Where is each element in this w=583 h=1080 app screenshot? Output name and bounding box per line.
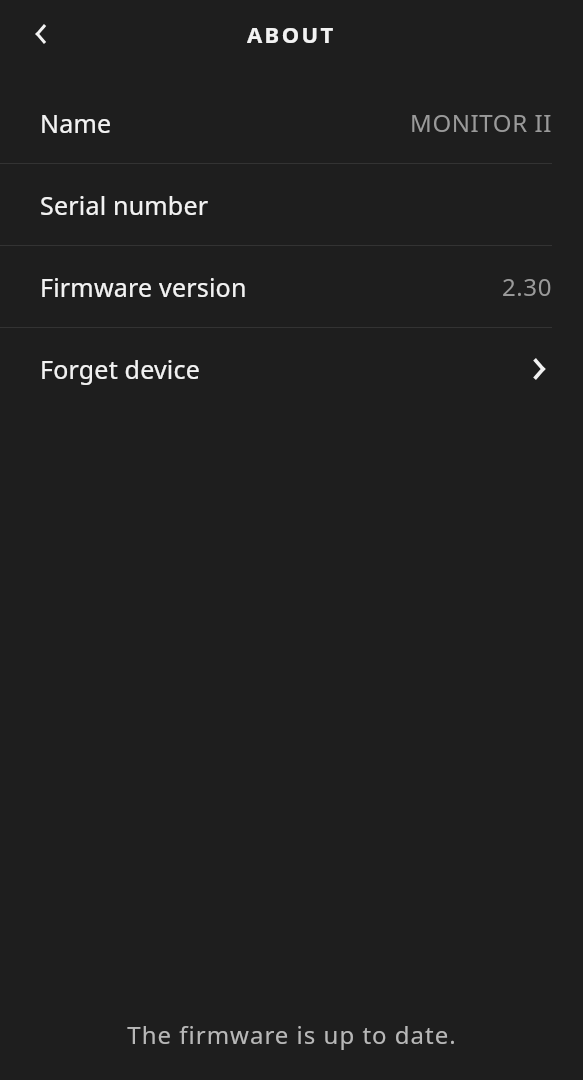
staticText: The firmware is up to date. <box>127 1018 457 1051</box>
staticText: Serial number <box>40 188 209 222</box>
other: Forget device <box>524 355 552 383</box>
button[interactable]: Back <box>22 14 62 54</box>
button[interactable]: Serial number <box>0 164 583 245</box>
button[interactable]: Forget device <box>0 328 583 409</box>
button[interactable]: Firmware version <box>0 246 583 327</box>
staticText: ABOUT <box>247 19 336 49</box>
staticText: 2.30 <box>501 270 552 303</box>
staticText: Forget device <box>40 352 201 386</box>
button[interactable]: Name <box>0 82 583 163</box>
staticText: MONITOR II <box>410 106 552 139</box>
staticText: Firmware version <box>40 270 247 304</box>
staticText: Name <box>40 106 112 140</box>
